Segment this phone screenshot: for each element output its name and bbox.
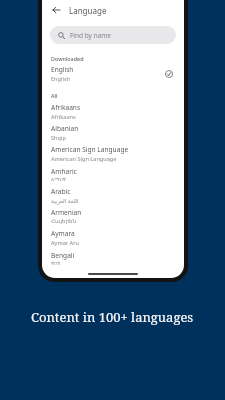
staticText: Aymara <box>51 229 75 238</box>
button[interactable]: Arabic <box>42 185 184 206</box>
staticText: Shqip <box>51 134 66 142</box>
button[interactable]: Back <box>42 0 184 20</box>
staticText: Content in 100+ languages <box>31 308 194 326</box>
staticText: Afrikaans <box>51 113 76 121</box>
staticText: Afrikaans <box>51 103 81 112</box>
staticText: Հայերեն <box>51 218 77 225</box>
staticText: Downloaded <box>51 55 84 62</box>
staticText: አማርኛ <box>51 177 67 183</box>
button[interactable]: Amharic <box>42 164 184 185</box>
button[interactable]: Downloaded <box>163 68 175 80</box>
button[interactable]: Armenian <box>42 206 184 227</box>
staticText: English <box>51 75 71 83</box>
button[interactable]: English <box>42 64 184 84</box>
staticText: Arabic <box>51 187 71 196</box>
staticText: বাংলা <box>51 261 60 267</box>
button[interactable]: American Sign Language <box>42 143 184 164</box>
button[interactable]: Albanian <box>42 122 184 143</box>
staticText: Amharic <box>51 167 77 176</box>
staticText: Aymar Aru <box>51 239 79 247</box>
staticText: اللغة العربية <box>51 197 79 205</box>
staticText: Bengali <box>51 251 75 260</box>
staticText: Albanian <box>51 124 79 133</box>
button[interactable]: Back <box>49 3 63 17</box>
button[interactable]: Aymara <box>42 227 184 248</box>
button[interactable]: Find by name <box>50 26 176 44</box>
button[interactable]: Bengali <box>42 248 184 269</box>
staticText: American Sign Language <box>51 155 117 163</box>
staticText: English <box>51 65 74 74</box>
staticText: Armenian <box>51 208 82 217</box>
button[interactable]: Afrikaans <box>42 101 184 122</box>
staticText: Find by name <box>70 31 112 40</box>
staticText: All <box>51 92 58 99</box>
staticText: Language <box>69 5 107 16</box>
staticText: American Sign Language <box>51 145 129 154</box>
